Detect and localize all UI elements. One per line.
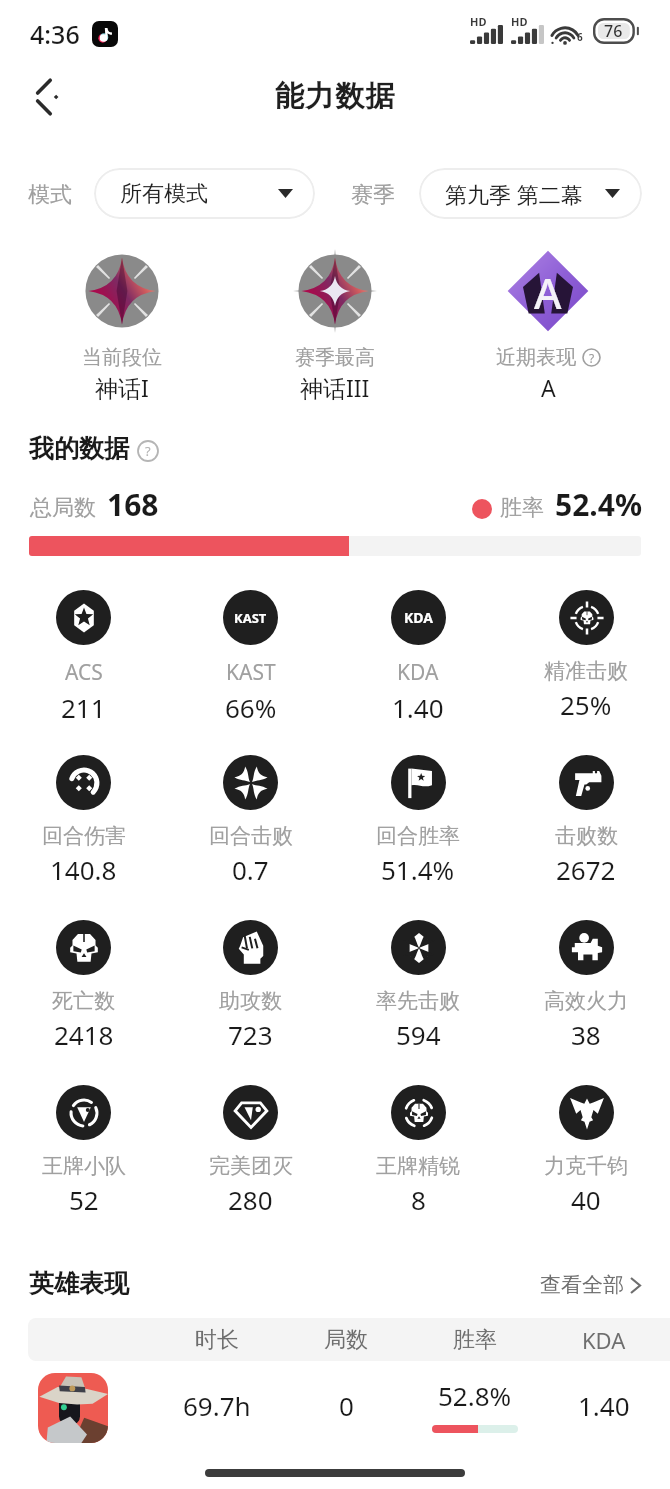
button[interactable]: 第九季 第二幕 [419,168,642,219]
staticText: 回合伤害 [42,823,126,849]
staticText: 0 [339,1388,354,1423]
staticText: 当前段位 [82,345,162,370]
button[interactable]: 赛季最高 [245,249,425,403]
staticText: 神话I [95,372,149,403]
staticText: 25% [560,687,612,722]
button[interactable]: A [458,249,638,403]
button[interactable]: 助攻数 [167,920,334,1052]
button[interactable]: 精准击败 [502,590,670,722]
button[interactable]: 回合胜率 [334,755,502,887]
staticText: 52.4% [555,484,642,525]
staticText: 6 [577,30,583,44]
button[interactable]: KDA [334,590,502,725]
button[interactable]: 击败数 [502,755,670,887]
staticText: 52 [69,1182,99,1217]
staticText: 完美团灭 [209,1153,293,1179]
staticText: 模式 [28,181,72,209]
button[interactable]: 死亡数 [0,920,167,1052]
staticText: 所有模式 [120,180,208,208]
staticText: 76 [604,20,623,42]
staticText: 回合胜率 [376,823,460,849]
staticText: HD [511,14,528,29]
staticText: 局数 [324,1326,368,1354]
button[interactable]: 回合击败 [167,755,334,887]
button[interactable]: 完美团灭 [167,1085,334,1217]
button[interactable]: ACS [0,590,167,725]
staticText: 0.7 [232,852,269,887]
staticText: 280 [228,1182,273,1217]
staticText: 723 [228,1017,273,1052]
button[interactable]: 当前段位 [32,249,212,403]
staticText: 140.8 [50,852,117,887]
staticText: 51.4% [381,852,455,887]
staticText: 查看全部 [540,1272,624,1298]
staticText: 胜率 [500,494,544,522]
staticText: 英雄表现 [29,1268,129,1299]
staticText: 38 [571,1017,601,1052]
button[interactable]: 高效火力 [502,920,670,1052]
button[interactable]: 王牌精锐 [334,1085,502,1217]
staticText: 总局数 [30,494,96,522]
staticText: 2418 [54,1017,114,1052]
staticText: KDA [397,658,439,687]
staticText: 力克千钧 [544,1153,628,1179]
staticText: 回合击败 [209,823,293,849]
staticText: KAST [234,609,267,627]
staticText: 1.40 [578,1388,630,1423]
staticText: ACS [65,658,103,687]
button[interactable]: 所有模式 [94,168,315,219]
button[interactable]: Back [13,69,69,125]
staticText: 8 [411,1182,426,1217]
button[interactable]: 率先击败 [334,920,502,1052]
staticText: HD [470,14,487,29]
button[interactable]: 查看全部 [540,1272,641,1298]
staticText: 211 [61,690,106,725]
button[interactable]: 69.7h [0,1357,670,1452]
staticText: 能力数据 [275,78,396,115]
staticText: 死亡数 [52,988,115,1014]
staticText: 精准击败 [544,658,628,684]
staticText: 2672 [556,852,616,887]
staticText: 助攻数 [219,988,282,1014]
staticText: ? [589,350,595,366]
staticText: 168 [107,484,159,525]
staticText: KAST [226,658,276,687]
staticText: 1.40 [392,690,444,725]
staticText: 时长 [195,1326,239,1354]
staticText: 4:36 [30,17,80,51]
staticText: 40 [571,1182,601,1217]
staticText: 赛季 [351,181,395,209]
staticText: 594 [396,1017,441,1052]
staticText: KDA [582,1325,626,1355]
staticText: ? [145,442,151,460]
staticText: 高效火力 [544,988,628,1014]
staticText: 52.8% [438,1378,512,1413]
staticText: 击败数 [555,823,618,849]
staticText: A [534,264,562,321]
staticText: 王牌精锐 [376,1153,460,1179]
staticText: 66% [225,690,277,725]
staticText: 69.7h [183,1388,251,1423]
staticText: A [541,372,556,403]
button[interactable]: 力克千钧 [502,1085,670,1217]
staticText: 第九季 第二幕 [445,179,583,209]
staticText: 神话III [300,372,370,403]
staticText: 率先击败 [376,988,460,1014]
button[interactable]: 回合伤害 [0,755,167,887]
staticText: 王牌小队 [42,1153,126,1179]
staticText: 我的数据 [29,433,129,464]
staticText: 胜率 [453,1326,497,1354]
button[interactable]: 王牌小队 [0,1085,167,1217]
staticText: 赛季最高 [295,345,375,370]
staticText: 近期表现 [496,345,576,370]
button[interactable]: KAST [167,590,334,725]
staticText: KDA [404,608,433,627]
